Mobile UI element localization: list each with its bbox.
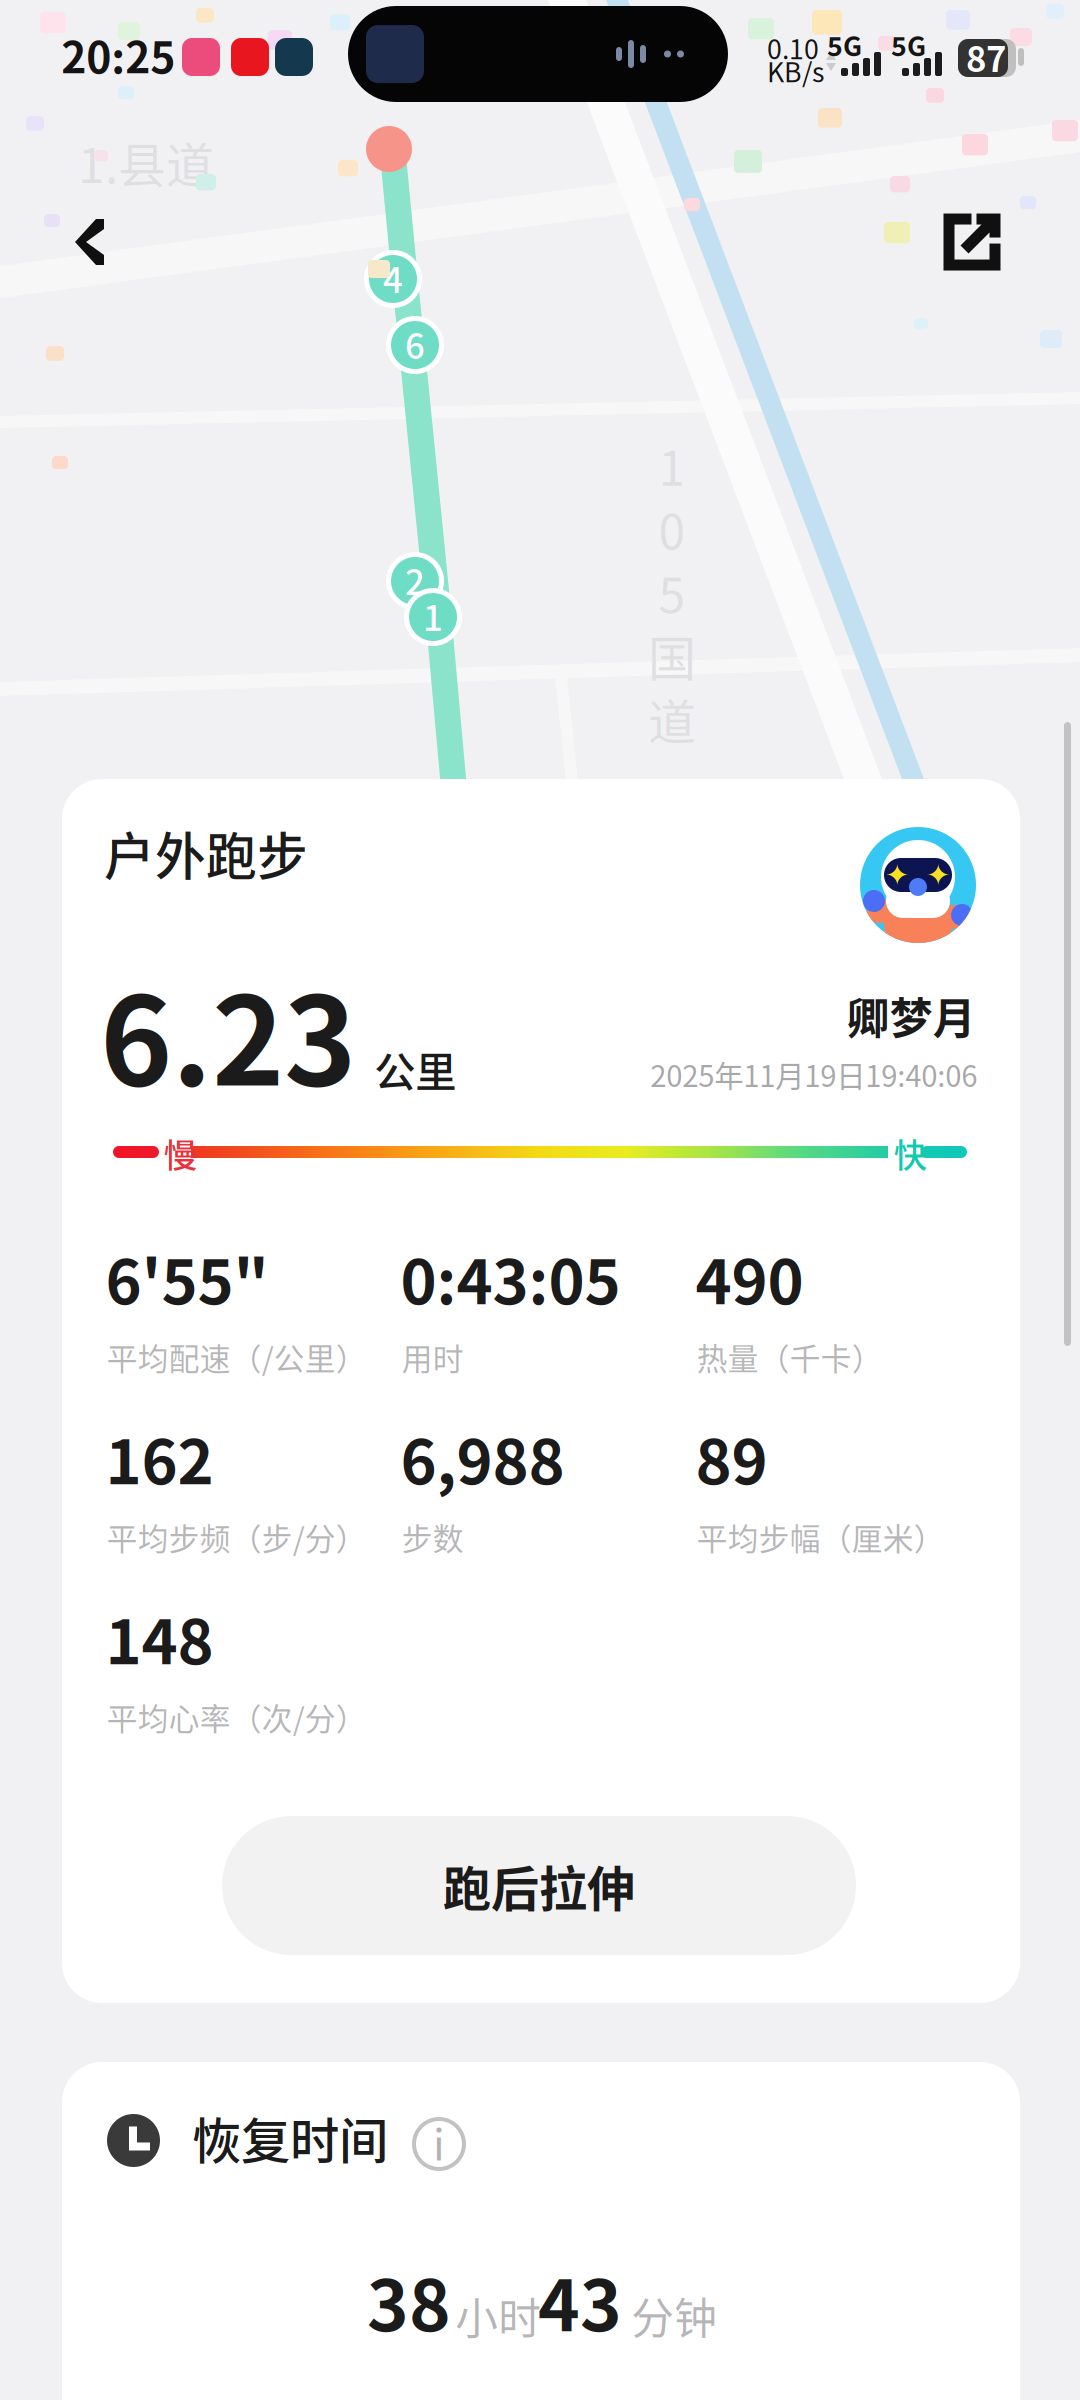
staticText: 平均心率（次/分） bbox=[107, 1695, 367, 1739]
staticText: 0 bbox=[658, 493, 685, 563]
staticText: 平均配速（/公里） bbox=[107, 1335, 367, 1379]
staticText: i bbox=[433, 2111, 445, 2173]
button[interactable]: Back bbox=[38, 190, 142, 294]
staticText: 平均步频（步/分） bbox=[107, 1515, 367, 1559]
staticText: 5 bbox=[658, 557, 685, 626]
staticText: 6,988 bbox=[400, 1413, 564, 1502]
button[interactable]: 跑后拉伸 bbox=[222, 1816, 856, 1955]
staticText: 小时 bbox=[455, 2285, 541, 2347]
staticText: 6 bbox=[405, 319, 425, 369]
staticText: ✦ bbox=[885, 858, 910, 892]
staticText: ✦ bbox=[926, 858, 951, 892]
staticText: 6'55" bbox=[105, 1233, 268, 1322]
staticText: 89 bbox=[695, 1413, 767, 1502]
staticText: 恢复时间 bbox=[192, 2102, 388, 2173]
staticText: 热量（千卡） bbox=[697, 1335, 883, 1379]
staticText: KB/s bbox=[767, 51, 824, 90]
staticText: 分钟 bbox=[631, 2285, 717, 2347]
staticText: 5G bbox=[891, 25, 926, 64]
staticText: 4 bbox=[383, 253, 403, 303]
staticText: 20:25 bbox=[61, 24, 175, 85]
staticText: 慢 bbox=[164, 1129, 197, 1177]
staticText: 490 bbox=[695, 1233, 803, 1322]
staticText: 国 bbox=[648, 620, 696, 690]
staticText: 2 bbox=[405, 555, 425, 605]
staticText: 2025年11月19日19:40:06 bbox=[650, 1053, 977, 1095]
staticText: 跑后拉伸 bbox=[443, 1851, 635, 1920]
staticText: 6.23 bbox=[100, 943, 356, 1121]
staticText: 步数 bbox=[402, 1515, 464, 1559]
staticText: 1 bbox=[423, 591, 443, 641]
staticText: 0.10 bbox=[767, 28, 819, 67]
staticText: 148 bbox=[105, 1593, 213, 1682]
staticText: 平均步幅（厘米） bbox=[697, 1515, 945, 1559]
staticText: 1.县道 bbox=[78, 127, 214, 197]
staticText: 5G bbox=[827, 25, 862, 64]
staticText: 38 bbox=[367, 2249, 451, 2352]
staticText: 公里 bbox=[374, 1039, 456, 1099]
staticText: 卿梦月 bbox=[847, 985, 976, 1047]
staticText: 道 bbox=[648, 684, 696, 753]
staticText: 162 bbox=[105, 1413, 213, 1502]
staticText: 快 bbox=[894, 1129, 927, 1177]
staticText: 户外跑步 bbox=[104, 816, 308, 890]
staticText: 用时 bbox=[402, 1335, 464, 1379]
button[interactable]: Share bbox=[920, 190, 1024, 294]
staticText: 1 bbox=[658, 430, 685, 499]
staticText: 43 bbox=[538, 2249, 622, 2352]
staticText: 87 bbox=[966, 32, 1006, 82]
staticText: 0:43:05 bbox=[400, 1233, 620, 1322]
